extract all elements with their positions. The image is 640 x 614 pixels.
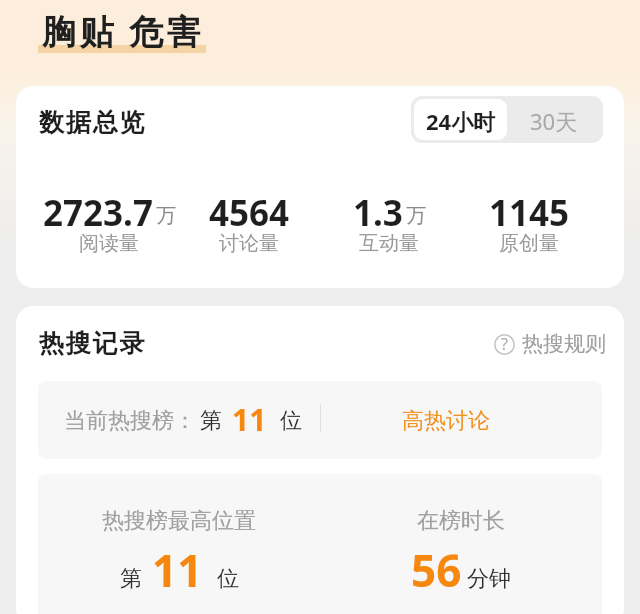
staticText: ? bbox=[501, 333, 508, 354]
staticText: 万 bbox=[406, 203, 426, 228]
staticText: 万 bbox=[156, 203, 176, 228]
staticText: 热搜记录 bbox=[39, 328, 147, 359]
staticText: 胸贴 危害 bbox=[42, 8, 204, 54]
staticText: 阅读量 bbox=[79, 231, 139, 253]
button[interactable]: 热搜规则 bbox=[494, 331, 606, 357]
staticText: 56 bbox=[411, 540, 462, 600]
staticText: 24小时 bbox=[426, 106, 496, 136]
staticText: 30天 bbox=[530, 106, 578, 136]
button[interactable]: 30天 bbox=[507, 99, 600, 140]
staticText: 第 bbox=[200, 407, 222, 435]
button[interactable]: 在榜时长 bbox=[320, 474, 602, 614]
button[interactable]: 1145 bbox=[459, 189, 599, 259]
staticText: 位 bbox=[280, 407, 302, 435]
button[interactable]: 4564 bbox=[179, 189, 319, 259]
staticText: 互动量 bbox=[359, 231, 419, 253]
staticText: 11 bbox=[152, 540, 203, 600]
staticText: 原创量 bbox=[499, 231, 559, 253]
staticText: 数据总览 bbox=[39, 107, 147, 138]
staticText: 4564 bbox=[209, 189, 290, 237]
staticText: 1.3 bbox=[353, 189, 403, 237]
staticText: 热搜榜最高位置 bbox=[102, 507, 256, 535]
staticText: 第 bbox=[120, 565, 142, 593]
button[interactable]: 1.3 bbox=[319, 189, 459, 259]
staticText: 分钟 bbox=[467, 565, 511, 593]
staticText: 在榜时长 bbox=[417, 507, 505, 535]
button[interactable]: 24小时 bbox=[414, 99, 507, 140]
staticText: 讨论量 bbox=[219, 231, 279, 253]
other: 热搜规则 bbox=[494, 334, 515, 355]
button[interactable]: 2723.7 bbox=[39, 189, 179, 259]
button[interactable]: 热搜榜最高位置 bbox=[38, 474, 320, 614]
staticText: 高热讨论 bbox=[402, 407, 490, 435]
staticText: 当前热搜榜： bbox=[64, 407, 196, 435]
staticText: 热搜规则 bbox=[522, 331, 606, 357]
staticText: 11 bbox=[232, 399, 267, 440]
staticText: 位 bbox=[217, 565, 239, 593]
staticText: 2723.7 bbox=[43, 189, 153, 237]
button[interactable]: 当前热搜榜： bbox=[38, 381, 602, 459]
staticText: 1145 bbox=[489, 189, 570, 237]
